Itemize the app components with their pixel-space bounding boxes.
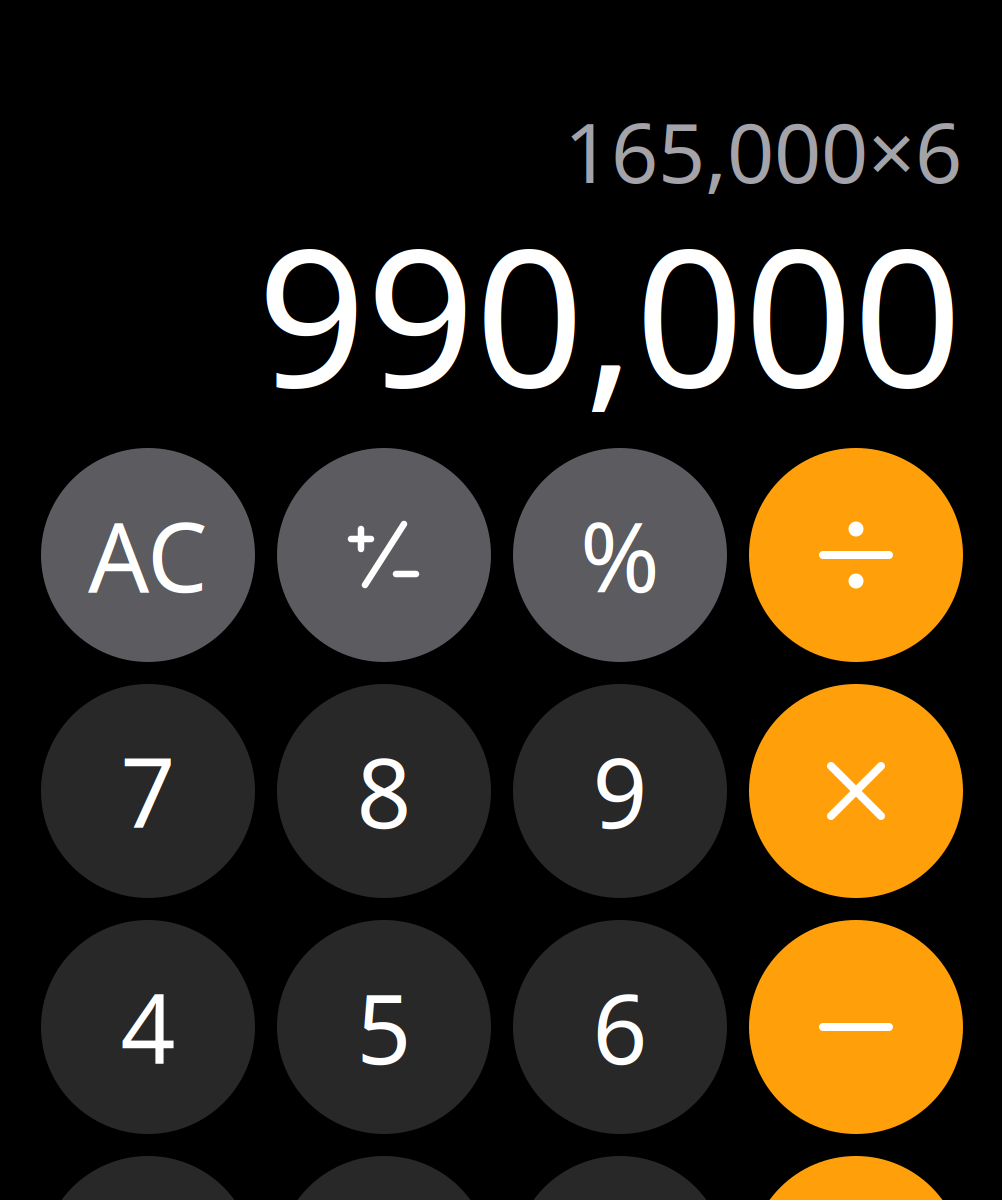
button[interactable]: 8 xyxy=(277,684,491,898)
staticText: 9 xyxy=(592,727,647,855)
button[interactable]: Multiply xyxy=(749,684,963,898)
button[interactable]: Divide xyxy=(749,448,963,662)
button[interactable]: 3 xyxy=(513,1156,727,1200)
button[interactable]: 5 xyxy=(277,920,491,1134)
staticText: 5 xyxy=(356,963,411,1091)
button[interactable]: Add xyxy=(749,1156,963,1200)
button[interactable]: AC xyxy=(41,448,255,662)
staticText: 4 xyxy=(120,963,175,1091)
button[interactable]: 2 xyxy=(277,1156,491,1200)
button[interactable]: 1 xyxy=(41,1156,255,1200)
button[interactable]: % xyxy=(513,448,727,662)
button[interactable]: 9 xyxy=(513,684,727,898)
staticText: 6 xyxy=(592,963,647,1091)
button[interactable]: 7 xyxy=(41,684,255,898)
staticText: AC xyxy=(88,491,208,619)
button[interactable]: Subtract xyxy=(749,920,963,1134)
staticText: 990,000 xyxy=(257,186,962,440)
staticText: 165,000×6 xyxy=(564,96,962,206)
staticText: 7 xyxy=(120,727,175,855)
staticText: 8 xyxy=(356,727,411,855)
button[interactable]: 6 xyxy=(513,920,727,1134)
button[interactable]: 4 xyxy=(41,920,255,1134)
button[interactable]: Plus minus xyxy=(277,448,491,662)
staticText: % xyxy=(580,491,660,619)
